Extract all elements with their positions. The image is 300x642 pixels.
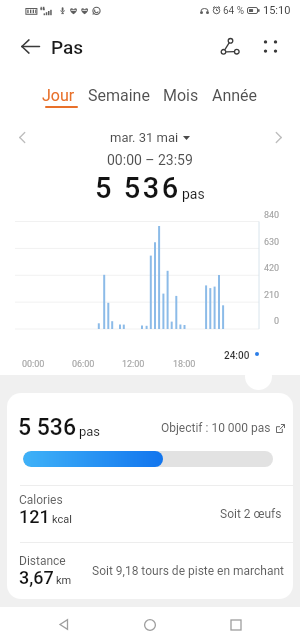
staticText: mar. 31 mai	[110, 130, 179, 145]
staticText: 64 %	[223, 5, 245, 17]
staticText: Année	[212, 86, 258, 105]
staticText: pas	[182, 186, 205, 202]
staticText: 24:00	[224, 350, 250, 362]
button[interactable]: Objectif : 10 000 pas	[161, 421, 285, 435]
staticText: Mois	[163, 86, 199, 105]
staticText: 00:00 – 23:59	[107, 152, 193, 168]
button[interactable]: Calories	[7, 486, 293, 542]
button[interactable]: More options	[248, 24, 292, 68]
button[interactable]: Semaine	[86, 86, 152, 105]
staticText: pas	[79, 424, 101, 439]
button[interactable]: Distance	[7, 543, 293, 599]
staticText: 18:00	[173, 359, 196, 370]
button[interactable]: Recent apps	[214, 607, 258, 642]
staticText: 12:00	[122, 359, 145, 370]
button[interactable]: Back	[42, 607, 86, 642]
staticText: Soit 2 œufs	[220, 507, 282, 521]
staticText: 5 536	[95, 171, 181, 205]
staticText: kcal	[52, 513, 72, 526]
staticText: Jour	[42, 86, 75, 105]
button[interactable]: Previous day	[12, 127, 32, 147]
button[interactable]: Mois	[161, 86, 201, 105]
staticText: Calories	[19, 493, 63, 507]
button[interactable]: 5 536	[18, 414, 101, 441]
staticText: 06:00	[72, 359, 95, 370]
button[interactable]: Home	[128, 607, 172, 642]
staticText: Distance	[19, 554, 66, 568]
staticText: km	[56, 574, 72, 587]
staticText: 420	[264, 263, 280, 274]
staticText: Pas	[51, 36, 84, 58]
staticText: 210	[264, 290, 280, 301]
staticText: Semaine	[88, 86, 150, 105]
staticText: Objectif : 10 000 pas	[161, 421, 271, 435]
staticText: 630	[264, 237, 280, 248]
button[interactable]: Share	[208, 24, 252, 68]
staticText: 121	[19, 506, 50, 527]
staticText: 840	[264, 210, 280, 221]
button[interactable]: Jour	[40, 86, 77, 108]
staticText: 3,67	[19, 567, 54, 588]
staticText: 15:10	[263, 4, 291, 17]
staticText: Soit 9,18 tours de piste en marchant	[92, 564, 285, 578]
staticText: 0	[274, 316, 280, 327]
button[interactable]: mar. 31 mai	[110, 130, 190, 145]
staticText: 00:00	[22, 359, 45, 370]
button[interactable]: Back	[8, 24, 52, 68]
button[interactable]: Année	[210, 86, 260, 105]
button[interactable]: Next day	[268, 127, 288, 147]
staticText: 5 536	[18, 414, 77, 441]
